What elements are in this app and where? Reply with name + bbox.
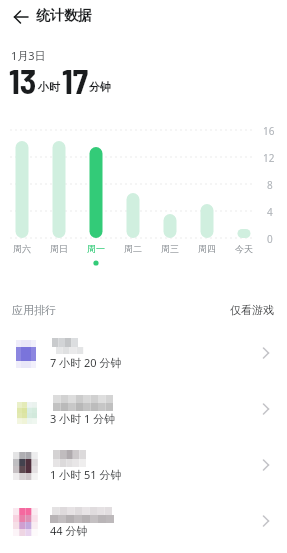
staticText: 周三 bbox=[161, 243, 179, 254]
staticText: 统计数据 bbox=[36, 7, 92, 25]
staticText: 今天 bbox=[235, 243, 253, 254]
staticText: 周二 bbox=[124, 243, 142, 254]
staticText: 16 bbox=[263, 124, 275, 138]
staticText: 周日 bbox=[50, 243, 68, 254]
staticText: 周六 bbox=[13, 243, 31, 254]
staticText: 4 bbox=[267, 205, 273, 219]
staticText: 13 bbox=[9, 60, 37, 101]
staticText: 小时 bbox=[38, 80, 60, 94]
staticText: 周一 bbox=[87, 243, 105, 254]
staticText: 0 bbox=[267, 232, 273, 246]
staticText: 1月3日 bbox=[11, 48, 46, 63]
staticText: 12 bbox=[263, 151, 275, 165]
staticText: 周四 bbox=[198, 243, 216, 254]
staticText: 8 bbox=[267, 178, 273, 192]
staticText: 仅看游戏 bbox=[230, 303, 274, 317]
staticText: 分钟 bbox=[89, 80, 111, 94]
staticText: 3 小时 1 分钟 bbox=[50, 411, 116, 426]
staticText: 17 bbox=[62, 60, 89, 101]
staticText: 44 分钟 bbox=[50, 523, 88, 538]
staticText: 1 小时 51 分钟 bbox=[50, 467, 122, 482]
staticText: 7 小时 20 分钟 bbox=[50, 355, 122, 370]
staticText: 应用排行 bbox=[12, 303, 56, 317]
